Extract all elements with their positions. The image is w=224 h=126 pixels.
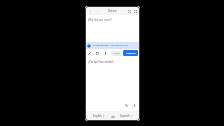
staticText: Spanish <box>120 114 130 118</box>
button[interactable]: Copy <box>124 103 129 108</box>
button[interactable]: Things written <box>85 42 140 49</box>
staticText: English <box>93 114 102 118</box>
staticText: Why did you come? <box>88 18 112 22</box>
button[interactable]: Translate <box>123 50 138 56</box>
button[interactable]: More <box>132 103 137 108</box>
staticText: ¿Por qué has venido? <box>88 60 114 64</box>
staticText: Things written <box>93 44 109 47</box>
staticText: Translate <box>126 52 136 55</box>
button[interactable]: Back <box>87 8 93 14</box>
button[interactable]: Spanish <box>116 114 137 118</box>
button[interactable]: Grid <box>126 8 132 14</box>
button[interactable]: Highlight <box>87 51 92 56</box>
staticText: Detect <box>108 9 117 13</box>
button[interactable]: Menu <box>132 8 138 14</box>
staticText: tran.google.com <box>110 44 128 47</box>
button[interactable]: Cancel <box>111 51 121 56</box>
button[interactable]: Swap languages <box>109 113 116 120</box>
button[interactable]: Note <box>95 51 100 56</box>
button[interactable]: Forward <box>94 8 100 14</box>
staticText: Cancel <box>113 52 120 55</box>
button[interactable]: Mic <box>103 51 108 56</box>
button[interactable]: English <box>88 114 109 118</box>
